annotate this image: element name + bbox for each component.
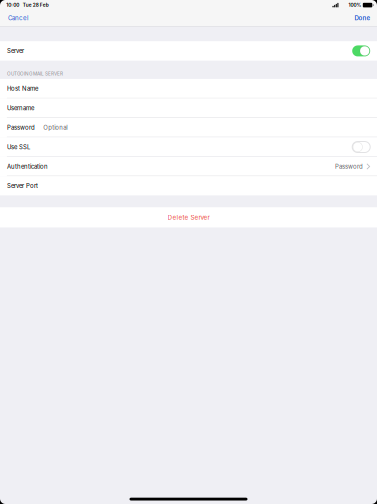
staticText: 10:00 (6, 2, 19, 8)
staticText: Password (335, 163, 363, 170)
staticText: Username (7, 104, 34, 112)
staticText: Password (7, 124, 35, 131)
staticText: Authentication (7, 163, 48, 170)
button[interactable]: Done (354, 14, 370, 22)
staticText: Server (7, 47, 24, 55)
staticText: Optional (43, 124, 67, 131)
staticText: Host Name (7, 85, 38, 92)
button[interactable]: Host Name (0, 79, 377, 98)
staticText: 100% (348, 2, 361, 8)
staticText: Delete Server (167, 214, 209, 221)
button[interactable]: Password (0, 118, 377, 137)
button[interactable]: Username (0, 98, 377, 118)
button[interactable]: Use SSL (0, 137, 377, 157)
button[interactable]: Authentication (0, 157, 377, 176)
button[interactable]: Server Port (0, 176, 377, 196)
staticText: OUTGOING MAIL SERVER (7, 71, 63, 76)
button[interactable]: Cancel (8, 14, 28, 22)
button[interactable]: Server (0, 41, 377, 61)
staticText: Use SSL (7, 143, 30, 151)
staticText: Done (354, 14, 370, 22)
staticText: Tue 28 Feb (23, 2, 49, 8)
staticText: Server Port (7, 182, 38, 190)
button[interactable]: Delete Server (0, 207, 377, 227)
staticText: Cancel (8, 14, 28, 22)
